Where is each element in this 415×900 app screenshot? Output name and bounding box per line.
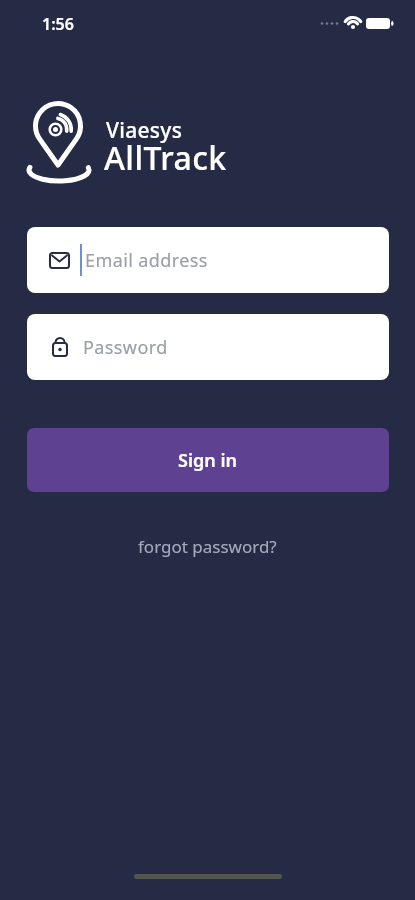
staticText: 1:56: [42, 13, 74, 35]
staticText: Viaesys: [106, 116, 183, 145]
staticText: Sign in: [178, 448, 238, 473]
staticText: AllTrack: [104, 136, 227, 180]
staticText: forgot password?: [138, 535, 277, 558]
staticText: Email address: [85, 248, 208, 273]
staticText: Password: [83, 335, 168, 360]
